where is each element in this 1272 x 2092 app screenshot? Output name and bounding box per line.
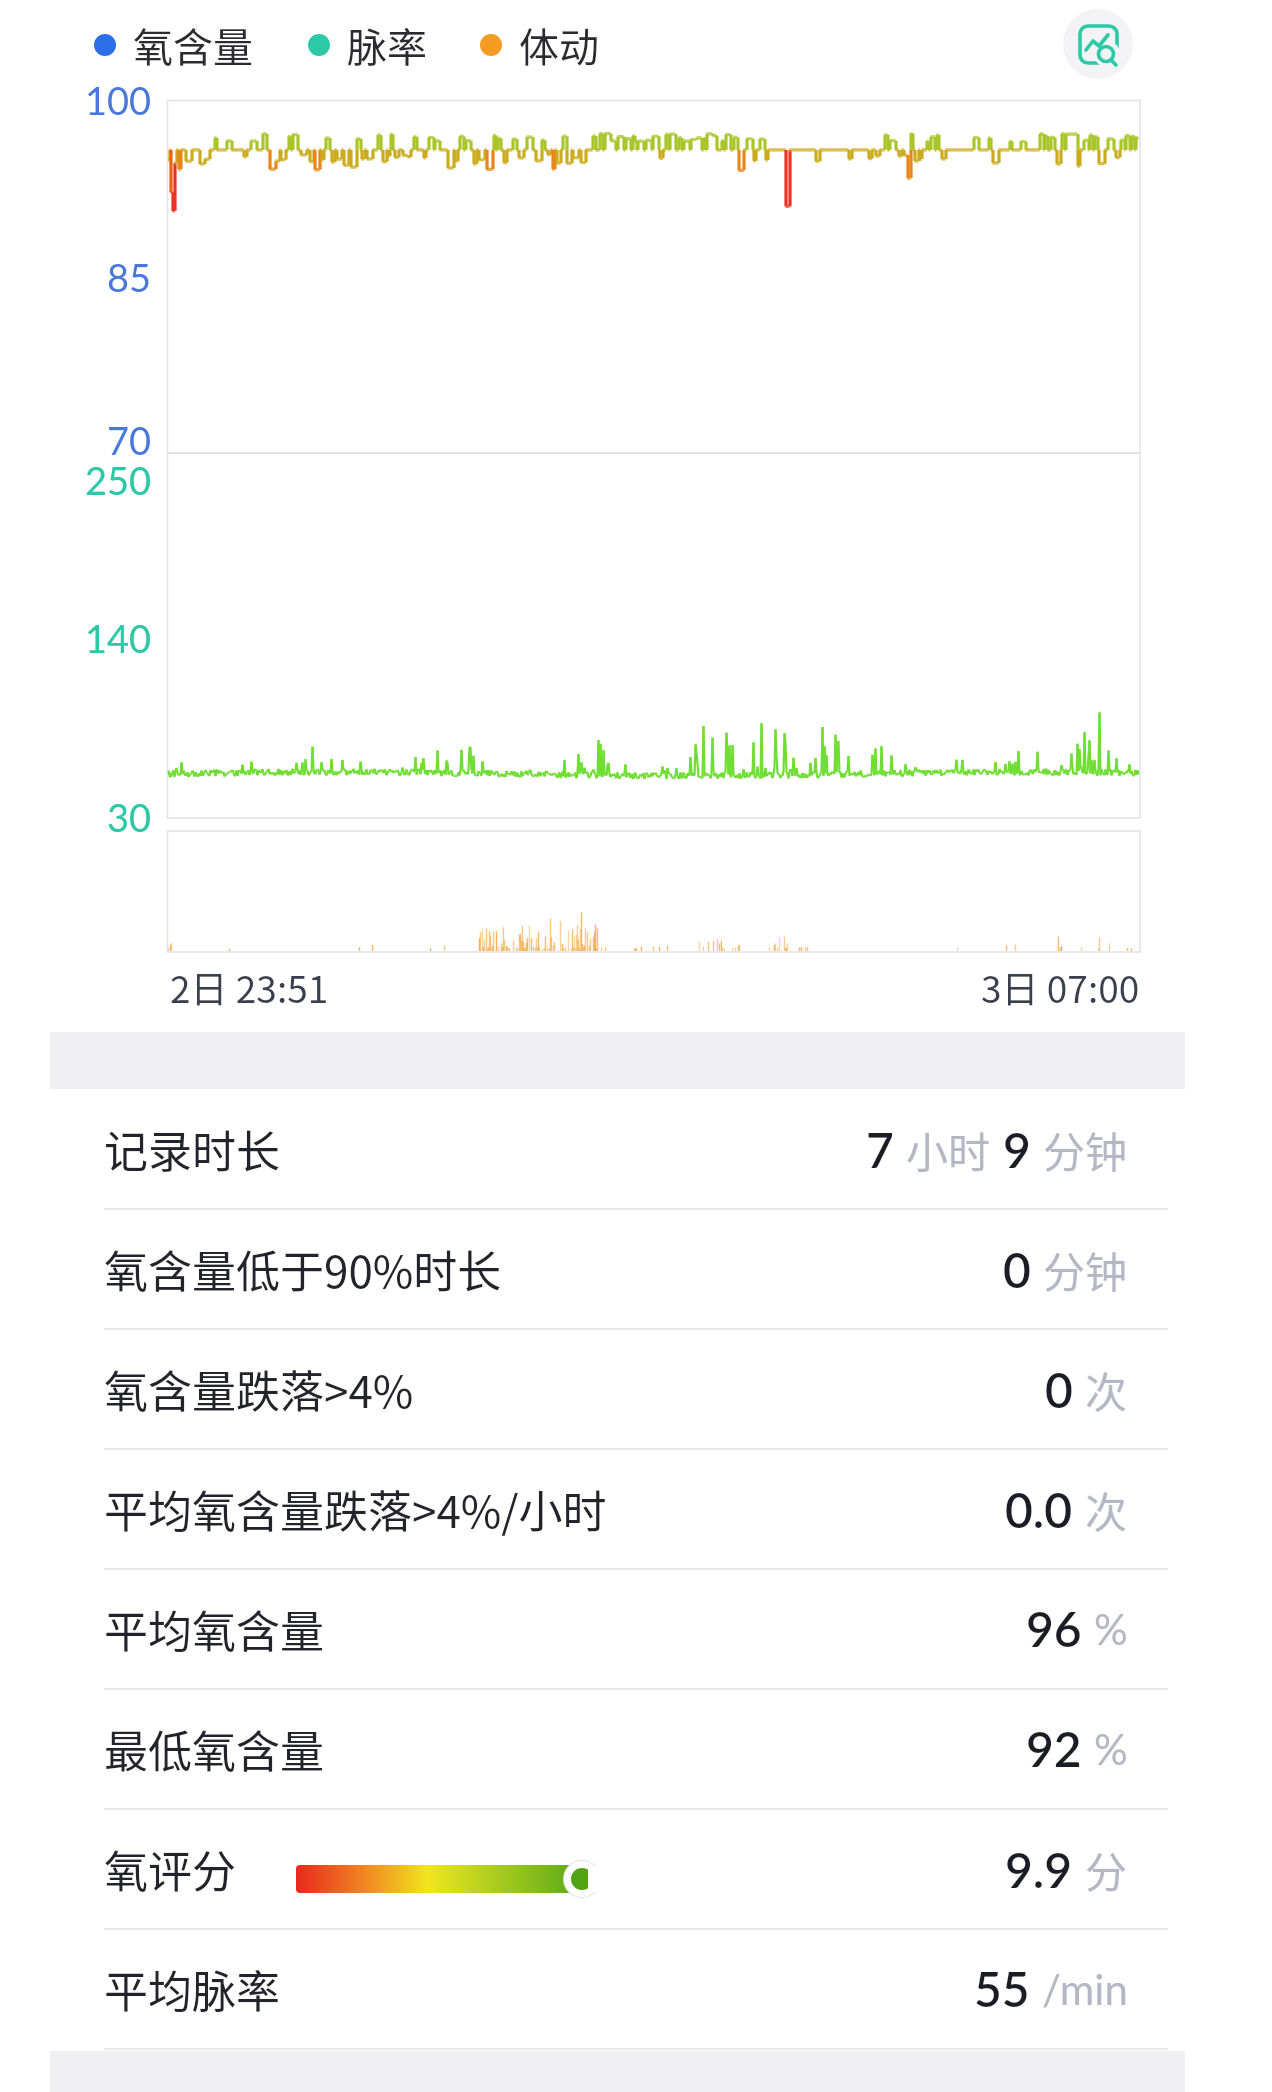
staticText: 氧含量 [133,16,253,74]
staticText: /min [1042,1964,1128,2014]
staticText: 最低氧含量 [104,1717,324,1781]
staticText: 氧含量低于90%时长 [104,1237,502,1301]
button[interactable]: 氧含量低于90%时长 [0,1209,1272,1329]
staticText: 平均氧含量跌落>4%/小时 [104,1477,607,1541]
staticText: 0 [1045,1361,1073,1419]
staticText: % [1094,1724,1128,1774]
staticText: 氧评分 [104,1837,236,1901]
button[interactable] [1063,9,1133,79]
button[interactable]: 氧含量跌落>4% [0,1329,1272,1449]
staticText: 脉率 [347,16,427,74]
staticText: 0.0 [1005,1481,1073,1539]
staticText: 分 [1085,1839,1128,1900]
staticText: 3日 07:00 [981,960,1140,1012]
staticText: 100 [85,77,152,123]
staticText: 体动 [519,16,599,74]
staticText: 2日 23:51 [170,960,329,1012]
staticText: 分钟 [1043,1119,1128,1180]
staticText: 0 [1003,1241,1031,1299]
button[interactable]: 最低氧含量 [0,1689,1272,1809]
staticText: 小时 [906,1119,991,1180]
staticText: 70 [107,417,152,463]
button[interactable]: 平均氧含量跌落>4%/小时 [0,1449,1272,1569]
button[interactable]: 氧评分 [0,1809,1272,1929]
staticText: 分钟 [1043,1239,1128,1300]
staticText: % [1094,1604,1128,1654]
staticText: 平均脉率 [104,1957,280,2021]
staticText: 记录时长 [104,1117,280,1181]
staticText: 55 [974,1960,1030,2018]
staticText: 氧含量跌落>4% [104,1357,414,1421]
staticText: 85 [107,254,152,300]
button[interactable]: 记录时长 [0,1089,1272,1209]
staticText: 9 [1003,1121,1031,1179]
staticText: 140 [85,615,152,661]
button[interactable]: 平均氧含量 [0,1569,1272,1689]
staticText: 92 [1026,1720,1082,1778]
staticText: 7 [866,1121,894,1179]
staticText: 次 [1085,1479,1128,1540]
staticText: 96 [1026,1600,1082,1658]
staticText: 250 [85,457,152,503]
staticText: 平均氧含量 [104,1597,324,1661]
button[interactable]: 平均脉率 [0,1929,1272,2049]
staticText: 30 [107,794,152,840]
staticText: 次 [1085,1359,1128,1420]
staticText: 9.9 [1005,1841,1073,1899]
